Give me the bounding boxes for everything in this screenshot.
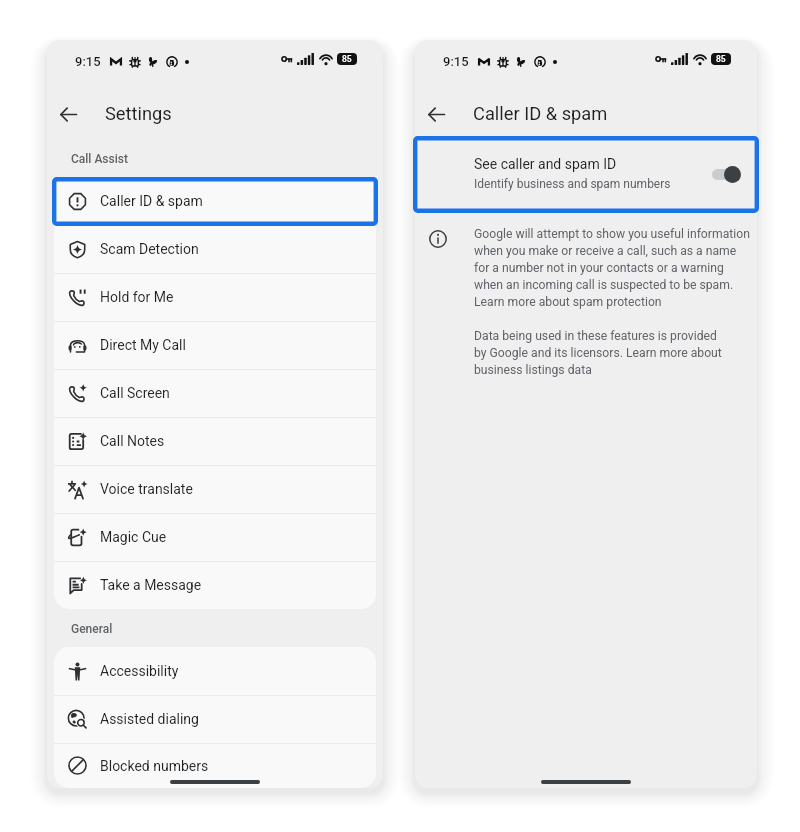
staticText: Hold for Me: [100, 289, 174, 305]
staticText: Caller ID & spam: [100, 193, 203, 209]
button[interactable]: Scam Detection: [54, 225, 376, 273]
button[interactable]: Call Screen: [54, 369, 376, 417]
staticText: Assisted dialing: [100, 711, 199, 727]
staticText: Direct My Call: [100, 337, 186, 353]
staticText: 85: [342, 54, 352, 64]
staticText: Data being used in these features is pro…: [474, 329, 722, 377]
staticText: 9:15: [443, 54, 469, 69]
button[interactable]: Assisted dialing: [54, 695, 376, 743]
staticText: Scam Detection: [100, 241, 199, 257]
button[interactable]: Call Notes: [54, 417, 376, 465]
staticText: Call Notes: [100, 433, 165, 449]
staticText: Take a Message: [100, 577, 202, 593]
staticText: Magic Cue: [100, 529, 167, 545]
staticText: See caller and spam ID: [474, 156, 617, 172]
staticText: 85: [716, 54, 726, 64]
button[interactable]: Blocked numbers: [54, 743, 376, 788]
button[interactable]: Voice translate: [54, 465, 376, 513]
button[interactable]: Accessibility: [54, 647, 376, 695]
button[interactable]: Back: [416, 94, 456, 134]
button[interactable]: See caller and spam ID: [415, 135, 757, 212]
button[interactable]: Caller ID & spam: [54, 177, 376, 225]
staticText: General: [71, 622, 113, 636]
staticText: Caller ID & spam: [473, 103, 608, 124]
staticText: Voice translate: [100, 481, 193, 497]
button[interactable]: See caller and spam ID toggle: [711, 165, 741, 183]
button[interactable]: Take a Message: [54, 561, 376, 609]
staticText: Settings: [105, 103, 172, 124]
staticText: Call Screen: [100, 385, 170, 401]
button[interactable]: Hold for Me: [54, 273, 376, 321]
staticText: Call Assist: [71, 152, 128, 166]
staticText: Blocked numbers: [100, 758, 209, 774]
staticText: Google will attempt to show you useful i…: [474, 227, 750, 309]
button[interactable]: Direct My Call: [54, 321, 376, 369]
staticText: 9:15: [75, 54, 101, 69]
staticText: Accessibility: [100, 663, 179, 679]
button[interactable]: Magic Cue: [54, 513, 376, 561]
button[interactable]: Back: [48, 94, 88, 134]
staticText: Identify business and spam numbers: [474, 177, 671, 191]
